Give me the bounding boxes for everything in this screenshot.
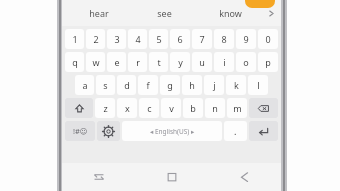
staticText: 1 (72, 33, 78, 45)
button[interactable]: 2 (86, 29, 105, 49)
button[interactable]: Backspace (249, 98, 278, 118)
button[interactable]: x (117, 98, 137, 118)
staticText: n (212, 102, 218, 114)
button[interactable]: y (170, 52, 190, 72)
staticText: i (223, 56, 226, 68)
button[interactable]: see (131, 0, 197, 26)
staticText: q (72, 56, 78, 68)
button[interactable]: t (149, 52, 168, 72)
button[interactable]: o (236, 52, 256, 72)
button[interactable]: i (214, 52, 234, 72)
staticText: g (167, 79, 173, 91)
staticText: h (189, 79, 195, 91)
staticText: v (169, 102, 174, 114)
button[interactable]: d (117, 75, 136, 95)
button[interactable]: 4 (128, 29, 147, 49)
staticText: w (92, 56, 100, 68)
staticText: z (103, 102, 108, 114)
button[interactable]: Enter (249, 121, 278, 141)
button[interactable]: hear (66, 0, 131, 26)
button[interactable]: g (160, 75, 180, 95)
staticText: 9 (243, 33, 249, 45)
staticText: o (243, 56, 249, 68)
staticText: l (257, 79, 260, 91)
staticText: m (233, 102, 242, 114)
staticText: 8 (221, 33, 227, 45)
staticText: p (265, 56, 271, 68)
button[interactable]: Back (208, 163, 281, 191)
button[interactable]: !#☺ (65, 121, 95, 141)
staticText: 2 (93, 33, 99, 45)
button[interactable]: h (182, 75, 202, 95)
button[interactable]: ◂ English(US) ▸ (122, 121, 222, 141)
button[interactable]: Recents (62, 163, 135, 191)
staticText: j (213, 79, 216, 91)
button[interactable]: q (65, 52, 84, 72)
button[interactable]: f (138, 75, 158, 95)
button[interactable]: n (205, 98, 225, 118)
staticText: 4 (135, 33, 141, 45)
button[interactable]: a (75, 75, 94, 95)
staticText: !#☺ (73, 126, 88, 136)
button[interactable]: Shift (65, 98, 93, 118)
staticText: 5 (156, 33, 162, 45)
staticText: r (136, 56, 140, 68)
staticText: 7 (199, 33, 205, 45)
staticText: k (234, 79, 239, 91)
staticText: hear (89, 7, 109, 19)
staticText: 3 (114, 33, 120, 45)
button[interactable]: r (128, 52, 147, 72)
button[interactable]: c (139, 98, 159, 118)
button[interactable]: 3 (107, 29, 126, 49)
staticText: 0 (265, 33, 271, 45)
staticText: f (146, 79, 150, 91)
staticText: c (147, 102, 152, 114)
staticText: s (103, 79, 108, 91)
button[interactable]: w (86, 52, 105, 72)
button[interactable]: 1 (65, 29, 84, 49)
staticText: b (190, 102, 196, 114)
button[interactable]: p (258, 52, 278, 72)
button[interactable]: 5 (149, 29, 168, 49)
button[interactable]: m (227, 98, 247, 118)
button[interactable]: z (95, 98, 115, 118)
staticText: see (157, 7, 172, 19)
staticText: 6 (177, 33, 183, 45)
button[interactable]: 8 (214, 29, 234, 49)
staticText: ◂ English(US) ▸ (150, 127, 195, 136)
button[interactable]: s (96, 75, 115, 95)
staticText: d (124, 79, 130, 91)
button[interactable]: j (204, 75, 224, 95)
button[interactable]: b (183, 98, 203, 118)
staticText: x (125, 102, 130, 114)
button[interactable]: e (107, 52, 126, 72)
staticText: u (199, 56, 205, 68)
button[interactable]: u (192, 52, 212, 72)
button[interactable]: k (226, 75, 246, 95)
button[interactable]: l (248, 75, 268, 95)
staticText: e (114, 56, 120, 68)
button[interactable]: v (161, 98, 181, 118)
staticText: know (219, 7, 242, 19)
button[interactable]: 9 (236, 29, 256, 49)
staticText: . (234, 125, 237, 137)
button[interactable]: More suggestions (263, 0, 279, 26)
button[interactable]: Keyboard settings (97, 121, 120, 141)
button[interactable]: know (197, 0, 263, 26)
button[interactable]: Home (135, 163, 208, 191)
button[interactable]: 6 (170, 29, 190, 49)
staticText: t (157, 56, 161, 68)
button[interactable]: 7 (192, 29, 212, 49)
staticText: a (82, 79, 88, 91)
button[interactable]: . (224, 121, 247, 141)
staticText: y (178, 56, 183, 68)
button[interactable]: 0 (258, 29, 278, 49)
